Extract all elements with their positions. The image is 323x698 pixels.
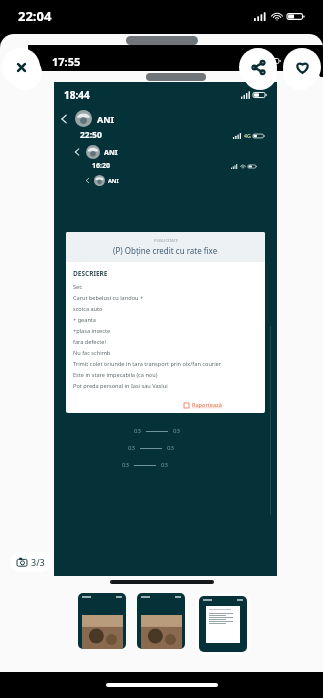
button[interactable]: Back (72, 147, 82, 157)
button[interactable] (56, 642, 96, 688)
button[interactable]: 3/3 (10, 552, 52, 572)
staticText: Pot preda personal in Iasi sau Vaslui (73, 382, 168, 390)
staticText: scoica auto (73, 305, 103, 313)
button[interactable] (78, 593, 126, 649)
staticText: 03 (161, 461, 168, 469)
staticText: 22:04 (18, 7, 52, 25)
staticText: PUBLICITATE (154, 238, 178, 243)
button[interactable] (157, 645, 195, 689)
staticText: 03 (167, 444, 174, 452)
staticText: Nu fac schimb (73, 349, 111, 357)
staticText: 03 (173, 427, 180, 435)
button[interactable]: Back (84, 177, 91, 184)
staticText: 03 (134, 427, 141, 435)
button[interactable]: Raportează (184, 401, 222, 409)
button[interactable] (105, 642, 145, 688)
staticText: 16:20 (92, 161, 110, 171)
button[interactable]: Close (8, 56, 42, 90)
staticText: 18:44 (64, 88, 90, 102)
staticText: Raportează (192, 401, 222, 409)
button[interactable]: Favorite (283, 48, 321, 86)
button[interactable]: PUBLICITATE (66, 232, 265, 413)
button[interactable]: Share (243, 56, 277, 90)
button[interactable]: Back (58, 113, 70, 125)
staticText: ANI (104, 147, 118, 157)
staticText: ANI (97, 113, 115, 125)
staticText: Trimit colet oriunde in tara transport p… (73, 360, 222, 368)
staticText: 03 (122, 461, 129, 469)
button[interactable]: Favorite (283, 56, 317, 90)
button[interactable]: Close (2, 48, 40, 86)
staticText: fara defecte! (73, 338, 106, 346)
staticText: Carut bebelusi cu landou + (73, 294, 144, 302)
staticText: 22:50 (80, 129, 102, 141)
button[interactable] (137, 593, 185, 649)
staticText: ANI (108, 177, 119, 185)
staticText: DESCRIERE (73, 269, 108, 278)
staticText: 03 (128, 444, 135, 452)
staticText: +plasa insecte (73, 327, 111, 335)
button[interactable] (199, 596, 247, 652)
staticText: + geanta (73, 316, 97, 324)
staticText: 4G (244, 132, 251, 139)
staticText: Este in stare impecabila (ca nou) (73, 371, 158, 379)
staticText: 3/3 (31, 556, 45, 568)
staticText: 17:55 (52, 54, 81, 69)
staticText: (P) Obține credit cu rate fixe (113, 245, 218, 256)
button[interactable]: Share (239, 48, 277, 86)
staticText: Set: (73, 283, 83, 291)
